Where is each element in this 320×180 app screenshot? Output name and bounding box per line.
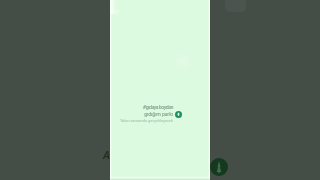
staticText: #gıdaya boydan: [143, 104, 173, 111]
button[interactable]: Logo: [175, 111, 182, 118]
staticText: gıdığım parkı: [144, 111, 173, 118]
staticText: A: [103, 147, 110, 162]
staticText: Yakın zamanda gerçekleşecek: [120, 118, 173, 123]
button[interactable]: Profile: [210, 158, 228, 176]
